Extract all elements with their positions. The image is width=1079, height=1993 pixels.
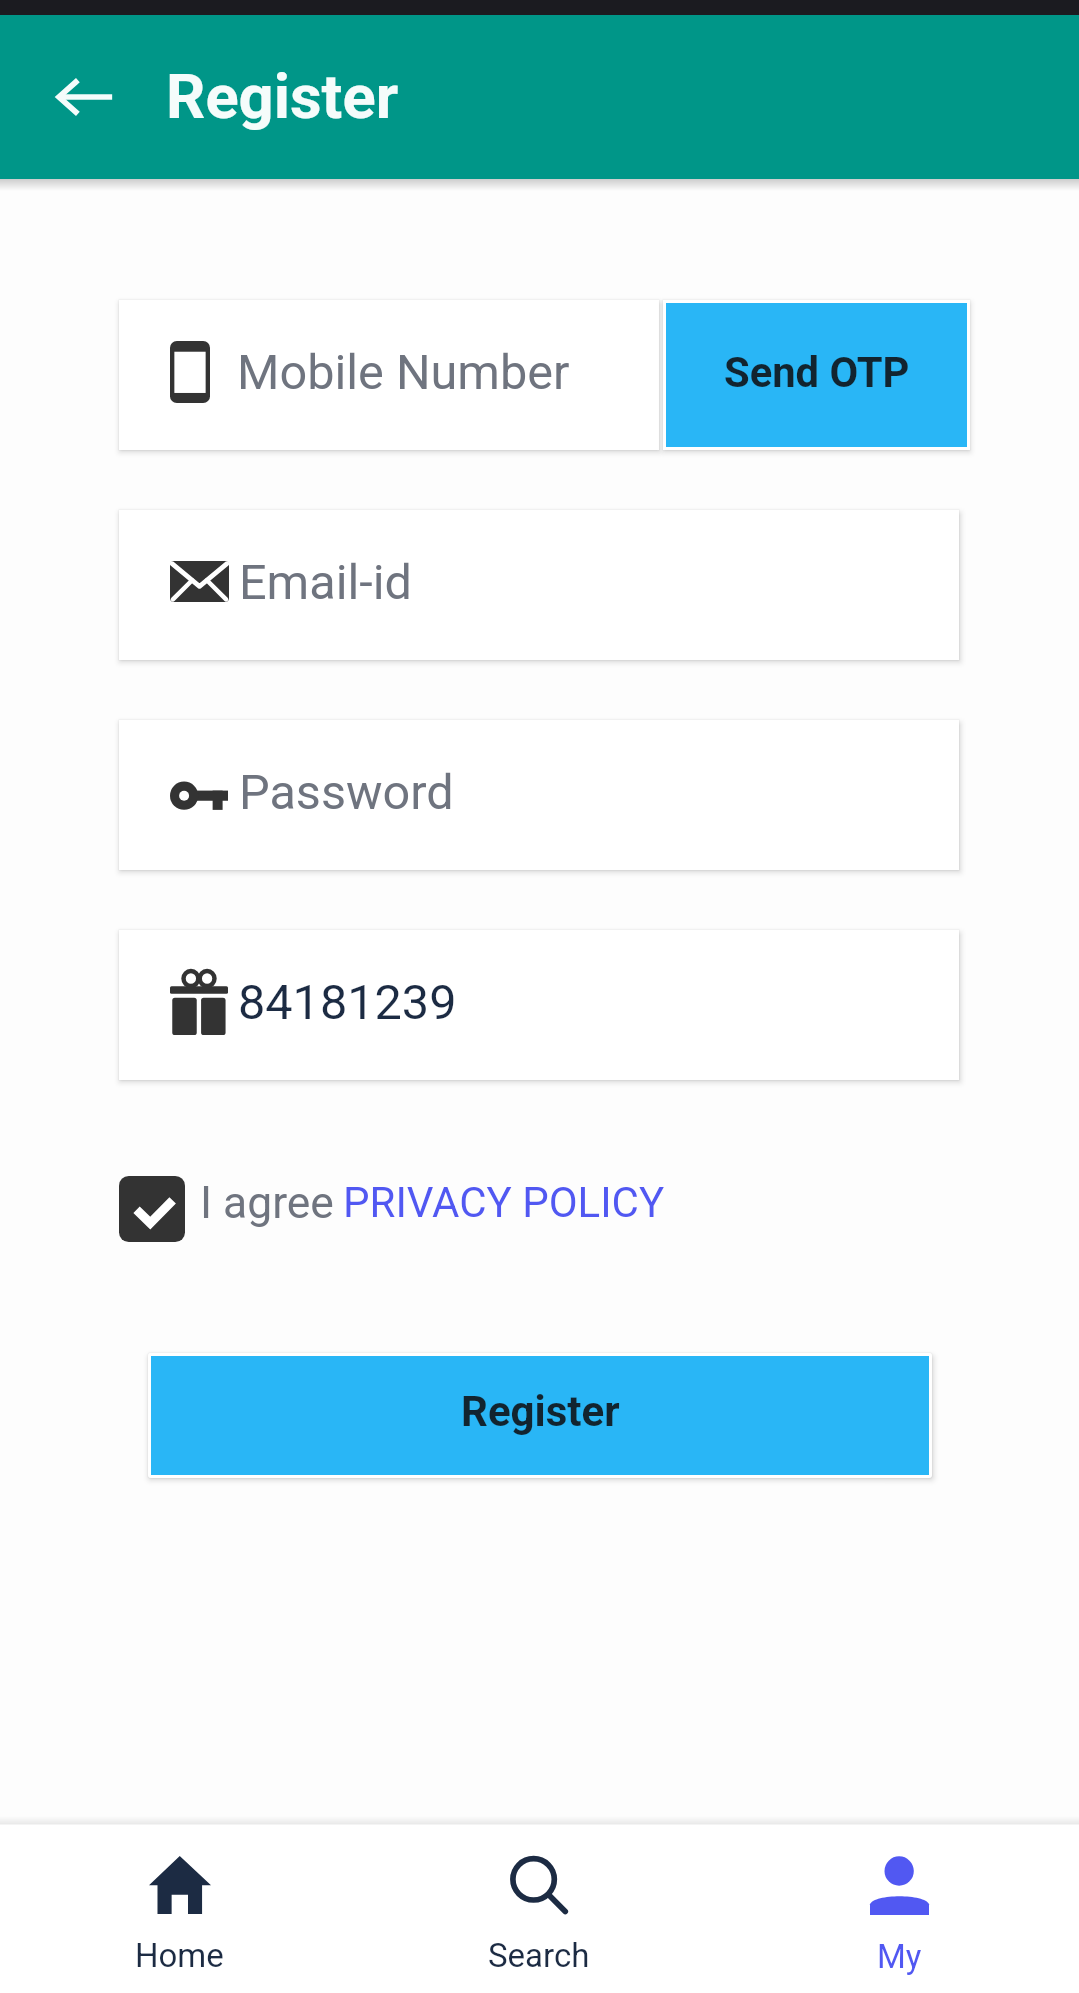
staticText: Search <box>488 1936 590 1975</box>
button[interactable]: 84181239 <box>119 930 959 1080</box>
button[interactable]: Email-id <box>119 510 959 660</box>
button[interactable]: I agree <box>119 1176 665 1242</box>
button[interactable]: Home <box>0 1825 359 1993</box>
button[interactable]: Register <box>151 1356 929 1475</box>
button[interactable]: Back <box>0 15 170 179</box>
staticText: Register <box>461 1387 620 1436</box>
staticText: Password <box>239 764 454 821</box>
staticText: PRIVACY POLICY <box>343 1178 665 1227</box>
staticText: Home <box>135 1936 224 1975</box>
staticText: Send OTP <box>724 348 910 397</box>
staticText: My <box>877 1937 922 1976</box>
staticText: 84181239 <box>238 974 457 1031</box>
staticText: I agree <box>200 1177 334 1229</box>
button[interactable]: Password <box>119 720 959 870</box>
staticText: Register <box>166 61 399 133</box>
button[interactable]: Mobile Number <box>119 300 659 450</box>
staticText: Mobile Number <box>237 344 570 401</box>
button[interactable]: My <box>719 1825 1079 1993</box>
button[interactable]: Search <box>359 1825 719 1993</box>
staticText: Email-id <box>239 554 412 611</box>
button[interactable]: Send OTP <box>666 303 967 447</box>
